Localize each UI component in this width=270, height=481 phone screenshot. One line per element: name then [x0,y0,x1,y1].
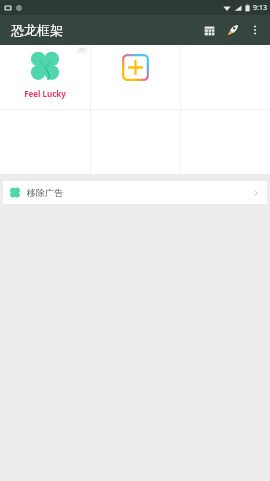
button[interactable]: Boost [221,18,245,42]
staticText: Feel Lucky [24,88,66,99]
button[interactable]: Calendar [197,18,221,42]
staticText: 恐龙框架 [11,22,63,38]
button[interactable]: 移除广告 [3,181,267,204]
staticText: 移除广告 [27,187,63,198]
button[interactable]: Add [91,45,180,109]
button[interactable]: More options [245,20,265,40]
button[interactable]: Add [122,54,149,81]
staticText: AD [79,47,86,54]
button[interactable]: AD [0,45,90,109]
staticText: 9:13 [253,3,267,13]
